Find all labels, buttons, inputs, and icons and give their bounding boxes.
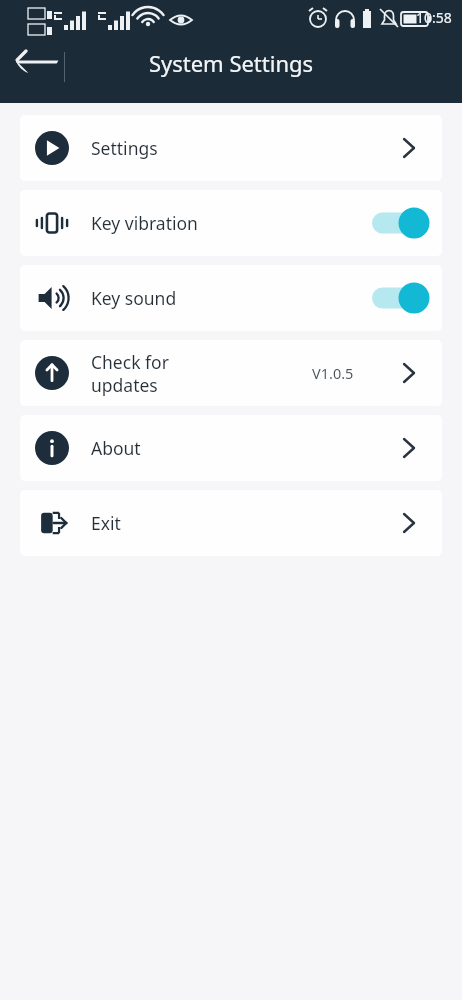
staticText: V1.0.5: [312, 363, 354, 383]
button[interactable]: Key sound: [20, 265, 442, 331]
staticText: Key sound: [91, 286, 177, 310]
other: Open Check for updates: [396, 358, 426, 388]
other: Open Settings: [396, 133, 426, 163]
button[interactable]: Check for updates: [20, 340, 442, 406]
staticText: About: [91, 436, 141, 460]
staticText: Key vibration: [91, 211, 198, 235]
other: Open About: [396, 433, 426, 463]
button[interactable]: Exit: [20, 490, 442, 556]
button[interactable]: Key vibration: [20, 190, 442, 256]
staticText: Exit: [91, 511, 121, 535]
staticText: Settings: [91, 136, 158, 160]
button[interactable]: Toggle Key vibration: [372, 206, 430, 240]
button[interactable]: About: [20, 415, 442, 481]
button[interactable]: Toggle Key sound: [372, 281, 430, 315]
button[interactable]: Settings: [20, 115, 442, 181]
staticText: 10:58: [416, 8, 452, 27]
other: Open Exit: [396, 508, 426, 538]
staticText: Check for updates: [91, 350, 169, 397]
staticText: System Settings: [0, 48, 462, 78]
button[interactable]: Back: [14, 29, 60, 75]
